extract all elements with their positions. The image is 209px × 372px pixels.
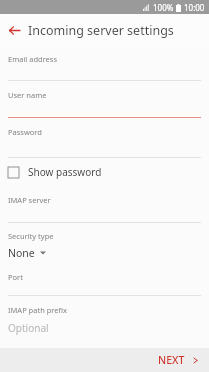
- button[interactable]: Email address: [0, 47, 209, 80]
- staticText: User name: [8, 90, 47, 100]
- staticText: IMAP path prefix: [8, 305, 68, 315]
- button[interactable]: IMAP path prefix: [0, 296, 209, 335]
- button[interactable]: IMAP server: [0, 186, 209, 222]
- staticText: NEXT: [158, 353, 185, 367]
- staticText: 10:00: [184, 2, 205, 13]
- staticText: Port: [8, 272, 23, 282]
- button[interactable]: User name: [0, 81, 209, 117]
- button[interactable]: Port: [0, 265, 209, 295]
- staticText: Incoming server settings: [28, 22, 174, 39]
- staticText: Security type: [8, 231, 54, 241]
- staticText: None: [8, 246, 35, 260]
- staticText: Password: [8, 127, 42, 137]
- staticText: Show password: [28, 165, 102, 179]
- staticText: Optional: [8, 321, 49, 335]
- staticText: IMAP server: [8, 195, 51, 205]
- button[interactable]: Show password: [0, 158, 209, 186]
- button[interactable]: Back: [0, 14, 28, 47]
- button[interactable]: Security type: [0, 223, 209, 265]
- staticText: 100%: [153, 2, 174, 13]
- button[interactable]: Password: [0, 118, 209, 157]
- button[interactable]: NEXT: [148, 348, 209, 372]
- staticText: Email address: [8, 54, 58, 64]
